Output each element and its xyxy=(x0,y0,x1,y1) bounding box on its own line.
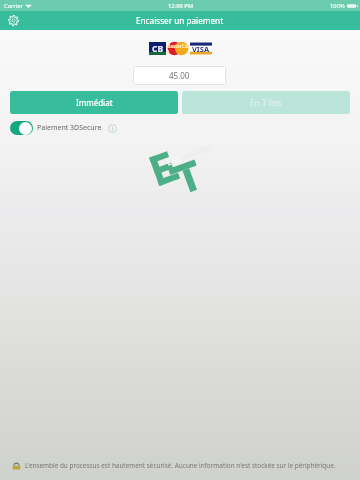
button[interactable]: Info xyxy=(107,123,117,133)
button[interactable]: En 3 fois xyxy=(182,91,350,114)
staticText: VISA xyxy=(192,44,210,54)
staticText: L'ensemble du processus est hautement sé… xyxy=(25,461,336,470)
staticText: 45.00 xyxy=(169,70,190,81)
staticText: Carrier xyxy=(4,2,23,10)
button[interactable]: Immédiat xyxy=(10,91,178,114)
staticText: Encaisser un paiement xyxy=(136,15,224,26)
staticText: 12:00 PM xyxy=(168,2,194,10)
staticText: TRANSAC xyxy=(178,141,215,163)
button[interactable]: Settings xyxy=(4,11,23,30)
staticText: EASY xyxy=(165,152,187,168)
staticText: MasterCard xyxy=(166,43,190,55)
button[interactable]: 45.00 xyxy=(133,66,226,85)
staticText: CB xyxy=(152,43,164,55)
staticText: 100% xyxy=(330,2,345,10)
staticText: Immédiat xyxy=(76,97,113,108)
staticText: Paiement 3DSecure xyxy=(37,123,102,133)
staticText: En 3 fois xyxy=(250,97,282,108)
button[interactable]: Paiement 3DSecure xyxy=(10,121,33,135)
